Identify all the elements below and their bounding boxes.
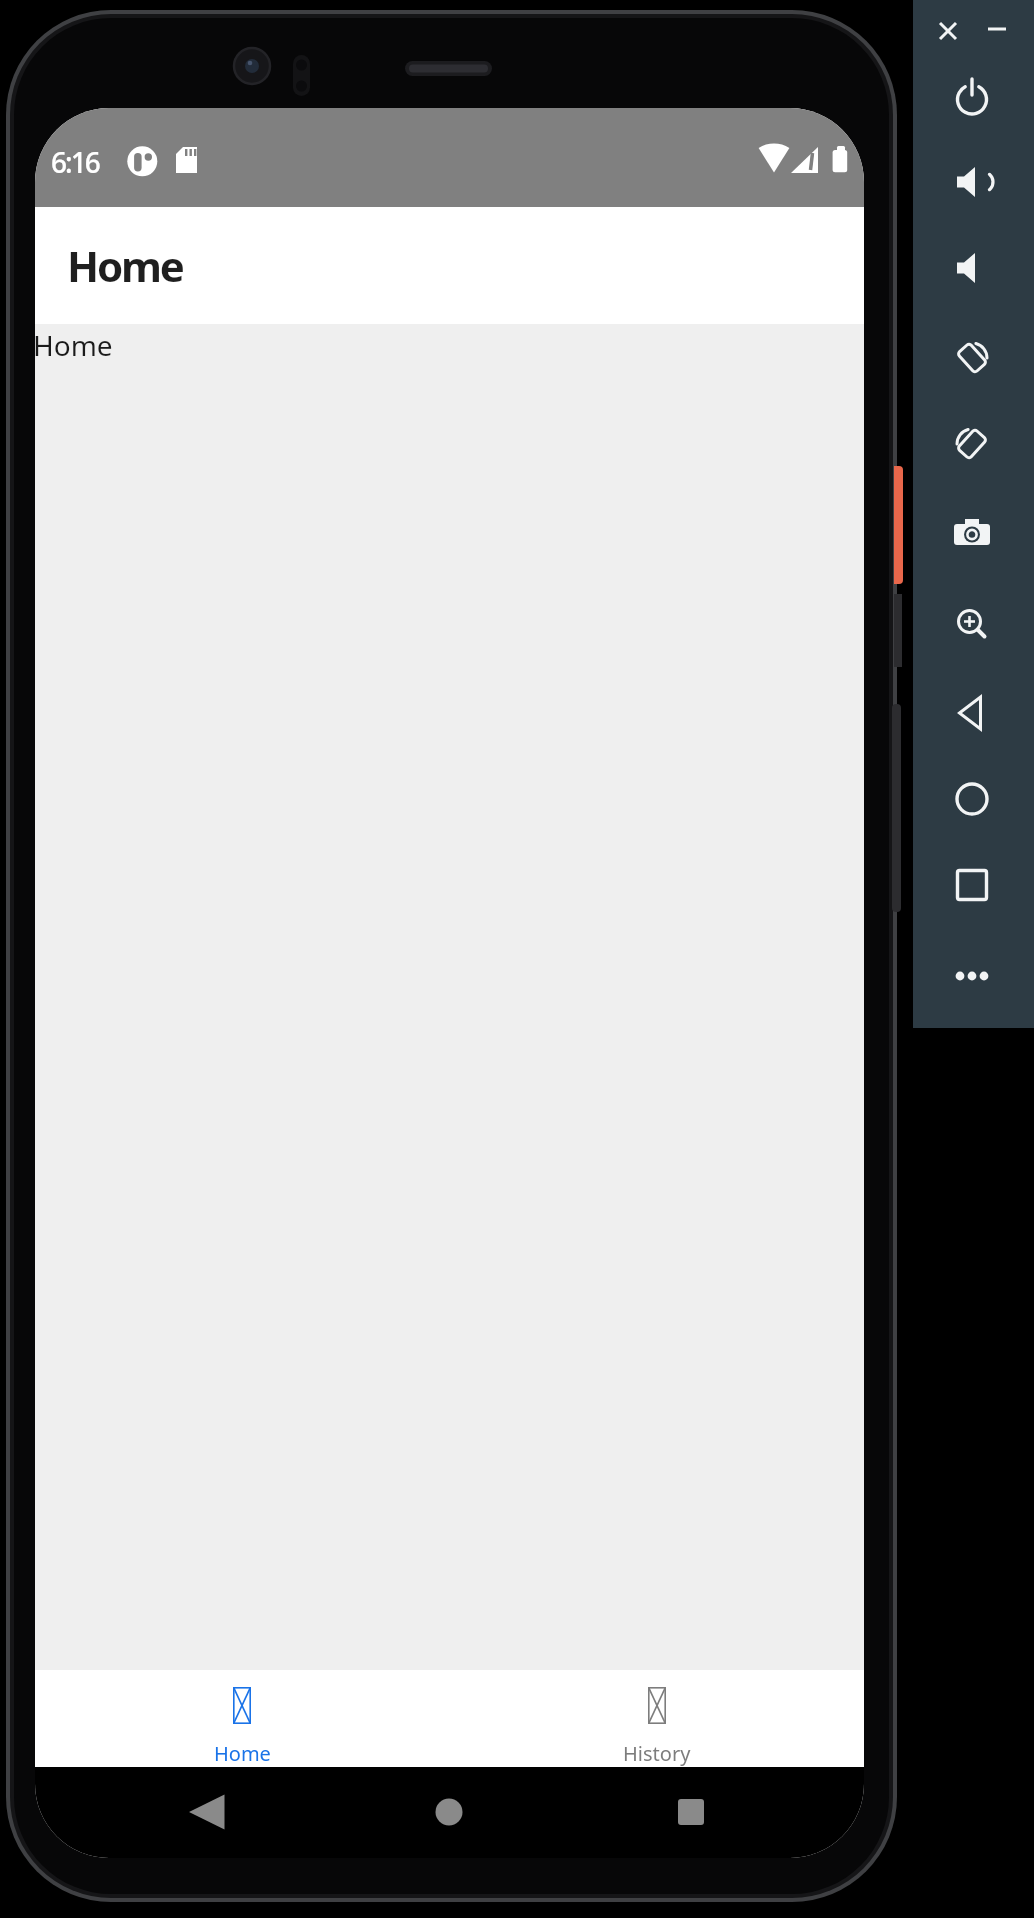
button[interactable] — [950, 954, 994, 998]
button[interactable] — [950, 75, 994, 119]
button[interactable] — [950, 511, 994, 555]
staticText: History — [623, 1740, 691, 1767]
staticText: Home — [35, 326, 113, 364]
button[interactable]: Home — [35, 1670, 449, 1767]
button[interactable] — [950, 863, 994, 907]
button[interactable] — [950, 246, 994, 290]
staticText: 6:16 — [51, 143, 99, 181]
button[interactable] — [950, 691, 994, 735]
button[interactable] — [950, 602, 994, 646]
staticText: Home — [67, 237, 183, 294]
button[interactable] — [950, 336, 994, 380]
button[interactable] — [983, 15, 1011, 43]
button[interactable]: History — [449, 1670, 864, 1767]
button[interactable] — [934, 17, 962, 45]
button[interactable] — [950, 422, 994, 466]
staticText: Home — [214, 1740, 271, 1767]
button[interactable] — [950, 160, 994, 204]
button[interactable] — [950, 777, 994, 821]
